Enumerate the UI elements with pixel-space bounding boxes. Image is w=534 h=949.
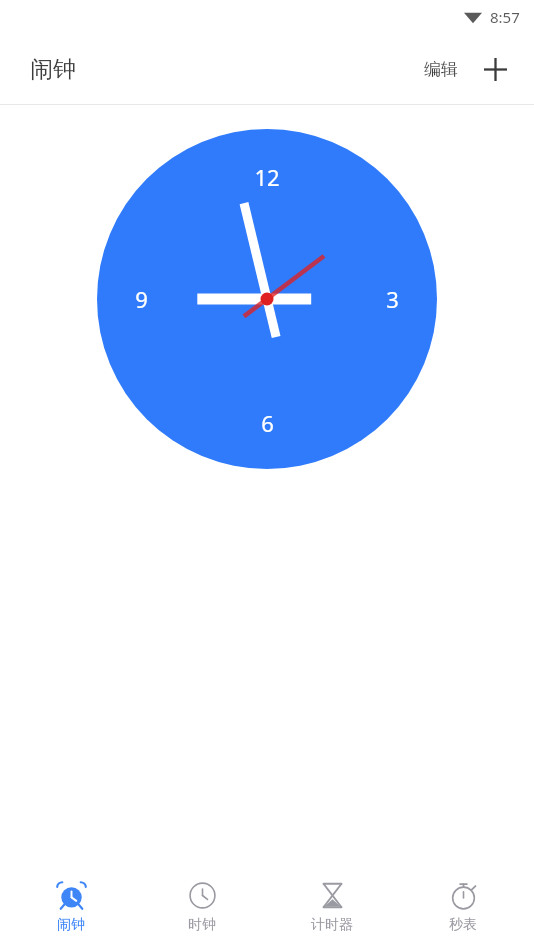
button[interactable]: 秒表 (403, 874, 523, 940)
button[interactable]: 编辑 (416, 49, 466, 90)
button[interactable]: 时钟 (142, 874, 262, 940)
staticText: 8:57 (490, 7, 520, 27)
staticText: 3 (386, 284, 399, 314)
button[interactable]: 计时器 (272, 874, 392, 940)
button[interactable]: 闹钟 (11, 874, 131, 940)
staticText: 计时器 (311, 916, 353, 934)
staticText: 9 (135, 284, 148, 314)
staticText: 秒表 (449, 916, 477, 934)
staticText: 编辑 (424, 59, 458, 80)
staticText: 闹钟 (30, 55, 76, 84)
staticText: 闹钟 (57, 916, 85, 934)
staticText: 6 (261, 408, 274, 438)
button[interactable]: Add alarm (474, 48, 516, 90)
staticText: 时钟 (188, 916, 216, 934)
other: Wi-Fi (464, 10, 482, 24)
staticText: 12 (254, 162, 280, 192)
